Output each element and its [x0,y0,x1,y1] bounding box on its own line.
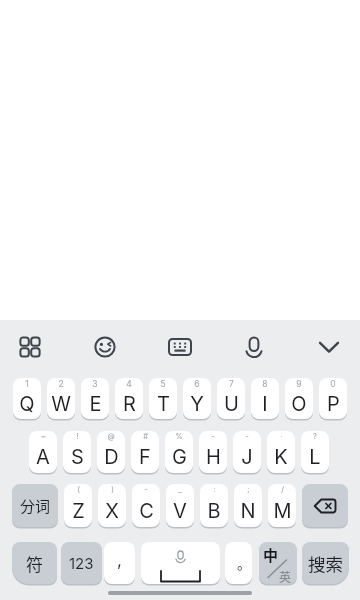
staticText: C [139,499,154,523]
button[interactable]: 。 [225,542,252,584]
staticText: J [241,445,253,469]
button[interactable]: 中 [259,542,297,584]
staticText: 1 [25,379,29,389]
button[interactable]: % [165,431,193,473]
staticText: 。 [237,553,251,573]
button[interactable]: 123 [61,542,102,584]
staticText: @ [107,432,115,441]
staticText: E [89,392,102,416]
button[interactable]: ; [234,484,262,527]
staticText: 3 [92,379,98,389]
staticText: 6 [194,379,200,389]
staticText: 123 [69,554,94,572]
staticText: 2 [58,379,64,389]
button[interactable]: 1 [13,378,41,419]
staticText: T [157,392,170,416]
staticText: % [175,432,183,441]
button[interactable]: , [104,542,135,584]
button[interactable] [309,327,349,367]
staticText: 分词 [20,495,51,517]
staticText: 中 [263,544,279,566]
staticText: - [211,432,215,441]
button[interactable]: @ [97,431,125,473]
staticText: B [207,499,221,523]
staticText: 搜索 [308,551,343,576]
button[interactable] [141,542,220,584]
staticText: - [144,485,148,494]
button[interactable]: 9 [285,378,313,419]
staticText: · [280,432,283,441]
staticText: L [309,445,321,469]
button[interactable]: 4 [115,378,143,419]
staticText: Q [19,392,35,416]
button[interactable]: - [199,431,227,473]
staticText: 0 [330,379,336,389]
staticText: 5 [160,379,166,389]
staticText: I [262,392,268,416]
staticText: # [143,432,148,441]
staticText: 英 [279,568,292,585]
staticText: X [105,499,119,523]
staticText: Z [72,499,85,523]
staticText: ! [76,432,79,441]
button[interactable]: 分词 [12,484,58,527]
button[interactable]: ~ [29,431,57,473]
staticText: S [71,445,84,469]
button[interactable]: ( [64,484,92,527]
button[interactable]: 2 [47,378,75,419]
staticText: Y [190,392,204,416]
staticText: , [117,550,122,571]
staticText: R [123,392,136,416]
staticText: F [139,445,151,469]
staticText: 9 [296,379,302,389]
staticText: G [172,445,187,469]
button[interactable]: - [233,431,261,473]
staticText: ? [313,432,317,441]
button[interactable]: 0 [319,378,347,419]
button[interactable]: 搜索 [302,542,349,584]
button[interactable]: ? [301,431,329,473]
staticText: N [240,499,256,523]
button[interactable]: # [131,431,159,473]
staticText: 7 [229,379,234,389]
button[interactable]: 符 [12,542,57,584]
staticText: ~ [41,432,46,441]
staticText: W [51,392,71,416]
staticText: P [327,392,340,416]
staticText: K [274,445,288,469]
button[interactable]: · [267,431,295,473]
staticText: : [213,485,216,494]
staticText: _ [178,485,182,494]
staticText: ; [247,485,250,494]
button[interactable] [302,484,348,527]
staticText: ) [111,485,114,494]
button[interactable] [234,327,274,367]
button[interactable]: - [132,484,160,527]
staticText: M [273,499,292,523]
button[interactable]: 7 [217,378,245,419]
button[interactable]: ) [98,484,126,527]
staticText: - [245,432,249,441]
button[interactable]: _ [166,484,194,527]
button[interactable]: 6 [183,378,211,419]
staticText: V [173,499,187,523]
button[interactable]: ! [63,431,91,473]
button[interactable] [160,327,200,367]
staticText: 4 [126,379,132,389]
button[interactable] [85,327,125,367]
button[interactable]: : [200,484,228,527]
staticText: A [36,445,50,469]
staticText: O [291,392,307,416]
button[interactable]: 5 [149,378,177,419]
button[interactable] [10,327,50,367]
staticText: 8 [262,379,268,389]
button[interactable]: 3 [81,378,109,419]
staticText: ( [77,485,80,494]
staticText: / [281,485,284,494]
button[interactable]: / [268,484,296,527]
button[interactable]: 8 [251,378,279,419]
staticText: 符 [26,551,43,576]
staticText: U [224,392,239,416]
staticText: D [104,445,119,469]
staticText: H [206,445,221,469]
